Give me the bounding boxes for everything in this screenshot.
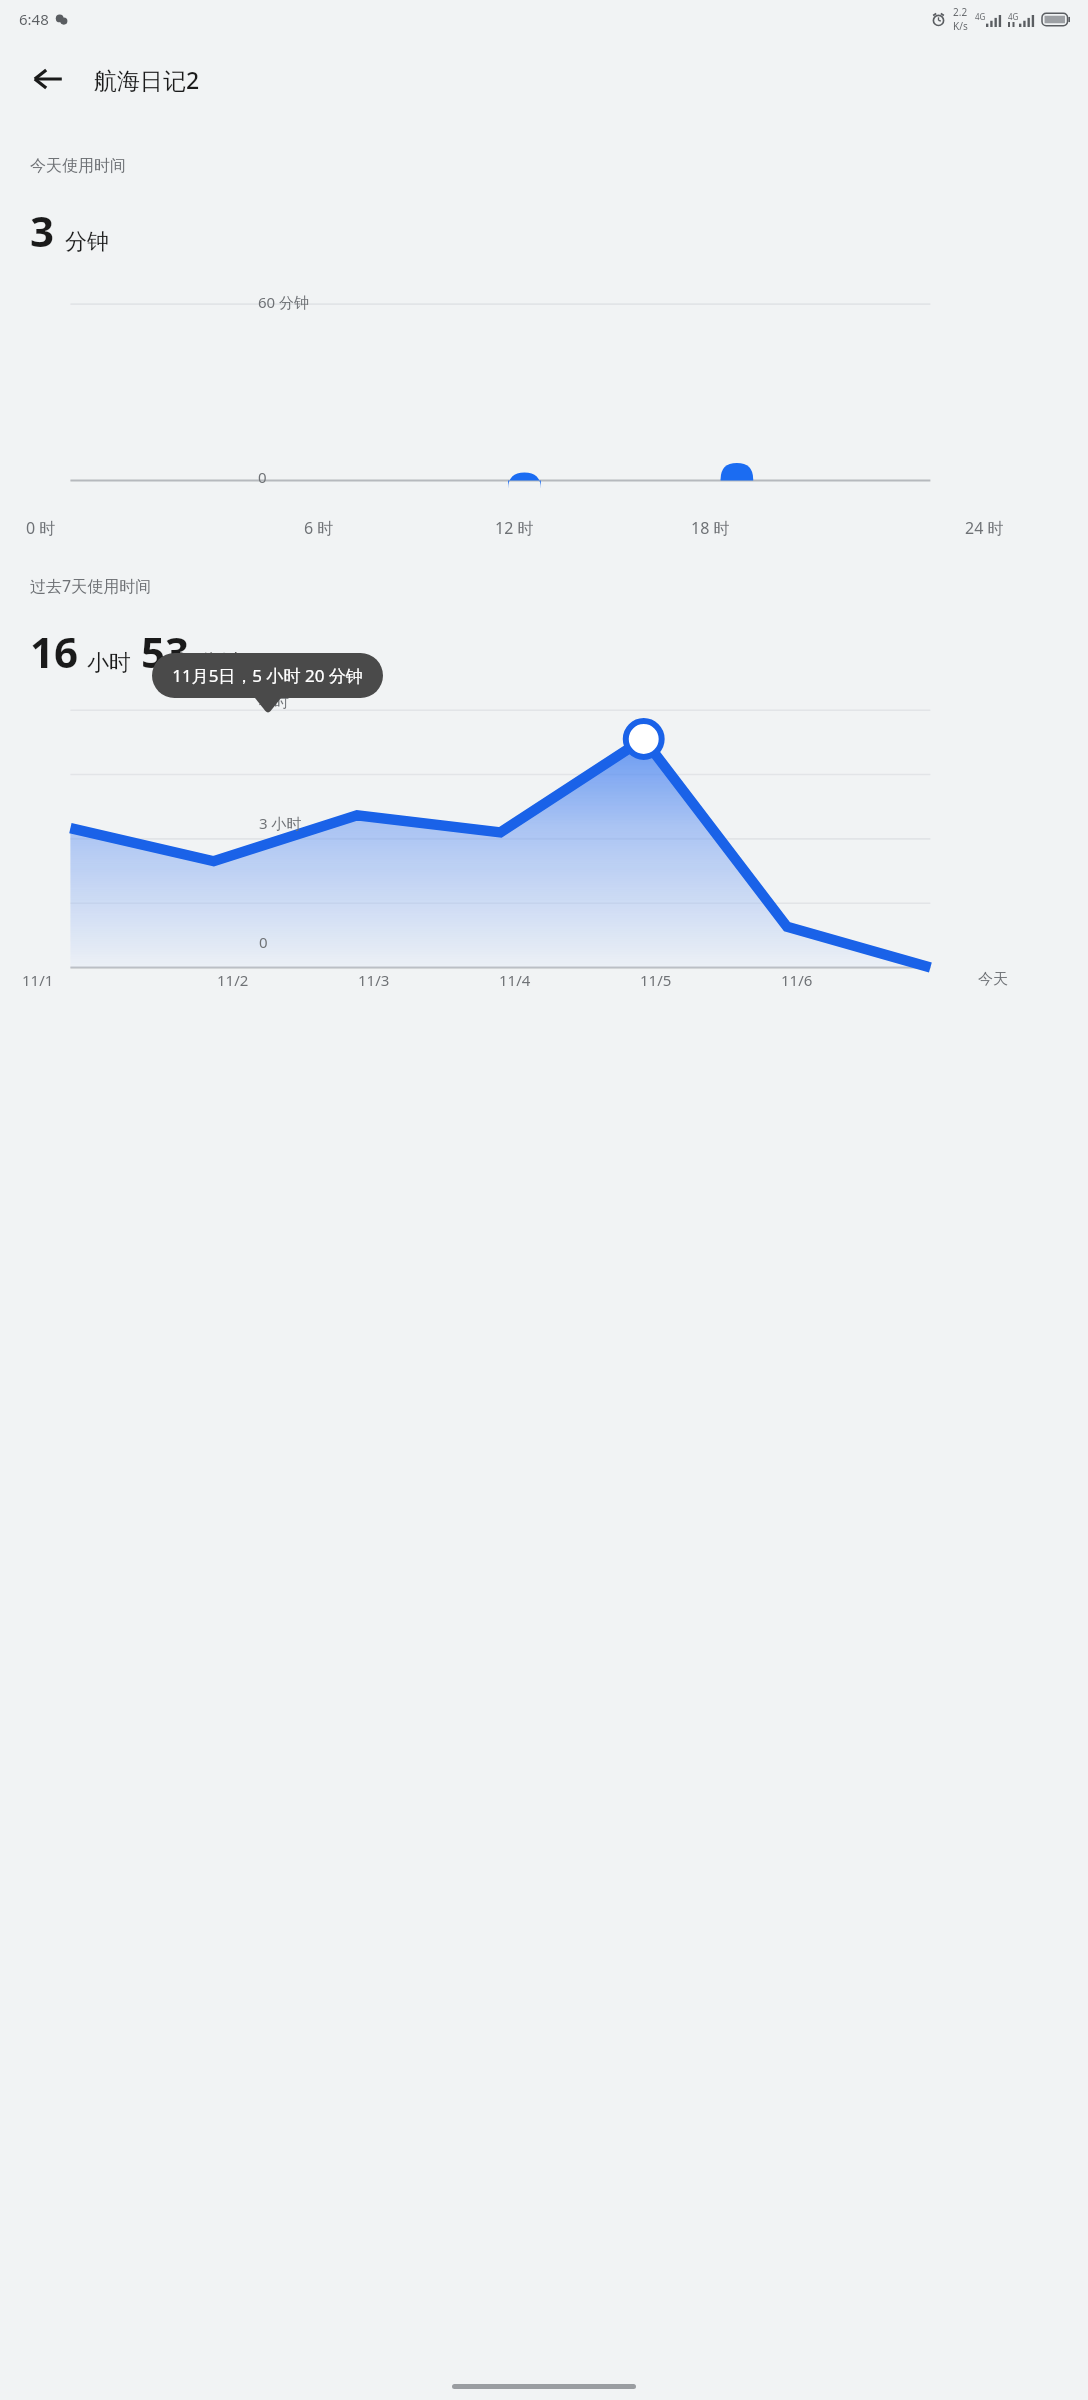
- staticText: 12 时: [495, 517, 534, 539]
- staticText: 24 时: [965, 517, 1004, 539]
- staticText: 6 时: [304, 517, 334, 539]
- staticText: 18 时: [691, 517, 730, 539]
- staticText: 今天使用时间: [30, 156, 126, 176]
- staticText: 分钟: [65, 228, 109, 256]
- staticText: K/s: [953, 19, 968, 33]
- staticText: 3 小时: [259, 813, 302, 833]
- staticText: 11月5日，5 小时 20 分钟: [172, 664, 363, 687]
- staticText: 2.2: [953, 5, 968, 19]
- staticText: 分钟: [198, 649, 242, 677]
- staticText: 今天: [978, 970, 1008, 989]
- staticText: 11/5: [640, 970, 672, 990]
- staticText: 16: [30, 623, 79, 680]
- staticText: 小时: [87, 649, 131, 677]
- staticText: 11/1: [22, 970, 54, 990]
- staticText: 0: [258, 467, 267, 487]
- button[interactable]: 返回: [20, 51, 76, 107]
- staticText: 60 分钟: [258, 292, 310, 312]
- staticText: 3: [30, 202, 55, 259]
- staticText: 11/3: [358, 970, 390, 990]
- staticText: 6:48: [19, 9, 49, 29]
- staticText: 小时: [259, 693, 289, 712]
- staticText: 4G: [1008, 11, 1019, 22]
- staticText: 航海日记2: [94, 64, 200, 95]
- staticText: 0 时: [26, 517, 56, 539]
- staticText: 4G: [975, 11, 986, 22]
- staticText: 53: [141, 623, 190, 680]
- staticText: 0: [259, 932, 268, 952]
- staticText: 11/4: [499, 970, 531, 990]
- staticText: 过去7天使用时间: [30, 575, 152, 597]
- staticText: 11/2: [217, 970, 249, 990]
- button[interactable]: 11月5日，5 小时 20 分钟: [152, 653, 383, 698]
- staticText: 11/6: [781, 970, 813, 990]
